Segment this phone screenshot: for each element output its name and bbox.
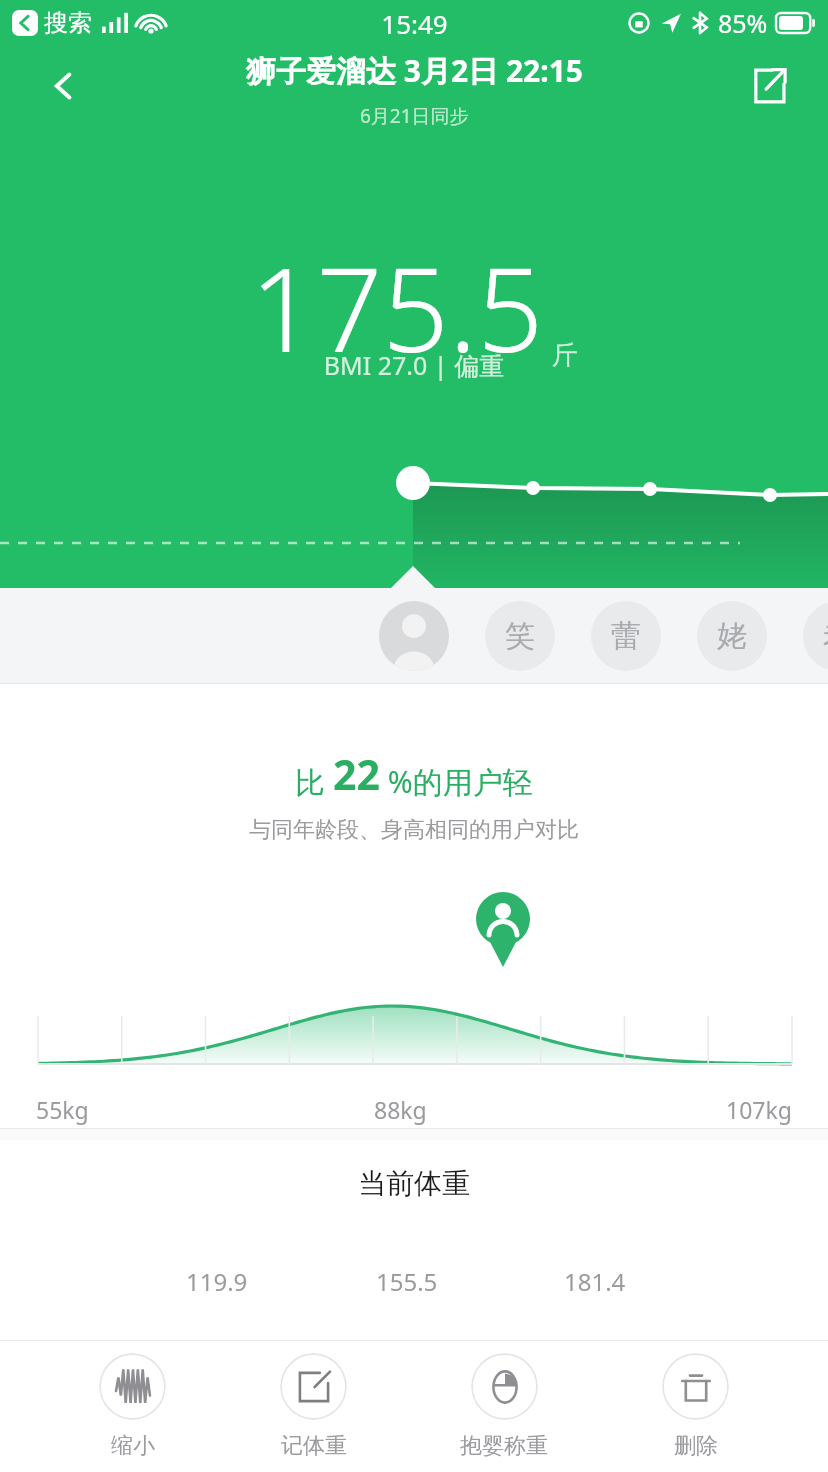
staticText: 181.4 <box>564 1265 626 1298</box>
button[interactable]: 笑 <box>485 601 555 671</box>
staticText: 比 <box>295 761 333 802</box>
button[interactable]: Current user <box>379 601 449 671</box>
staticText: 107kg <box>726 1094 792 1125</box>
staticText: 蕾 <box>611 617 641 655</box>
button[interactable]: 记体重 <box>266 1347 361 1466</box>
button[interactable]: Share <box>734 52 802 120</box>
staticText: 175.5 <box>250 228 544 386</box>
staticText: 85% <box>718 6 768 40</box>
staticText: BMI 27.0 | 偏重 <box>0 348 828 382</box>
staticText: 15:49 <box>381 6 448 41</box>
staticText: 155.5 <box>376 1265 438 1298</box>
staticText: 老 <box>823 617 828 655</box>
staticText: 55kg <box>36 1094 89 1125</box>
staticText: 22 <box>333 746 380 802</box>
button[interactable]: 老 <box>803 601 828 671</box>
staticText: 删除 <box>674 1432 718 1460</box>
staticText: 与同年龄段、身高相同的用户对比 <box>0 816 828 844</box>
button[interactable]: Back <box>30 52 98 120</box>
staticText: 119.9 <box>186 1265 248 1298</box>
button[interactable]: 抱婴称重 <box>446 1347 562 1466</box>
staticText: 缩小 <box>111 1432 155 1460</box>
button[interactable]: 删除 <box>648 1347 743 1466</box>
staticText: 6月21日同步 <box>360 103 469 129</box>
staticText: 抱婴称重 <box>460 1432 548 1460</box>
staticText: %的用户轻 <box>380 761 533 802</box>
button[interactable]: 缩小 <box>85 1347 180 1466</box>
staticText: 88kg <box>374 1094 427 1125</box>
button[interactable]: 姥 <box>697 601 767 671</box>
staticText: 笑 <box>505 617 535 655</box>
staticText: 姥 <box>717 617 747 655</box>
button[interactable]: 蕾 <box>591 601 661 671</box>
staticText: 当前体重 <box>0 1166 828 1201</box>
staticText: 搜索 <box>44 8 92 38</box>
staticText: 记体重 <box>281 1432 347 1460</box>
staticText: 斤 <box>552 339 578 372</box>
staticText: 狮子爱溜达 3月2日 22:15 <box>246 50 583 91</box>
